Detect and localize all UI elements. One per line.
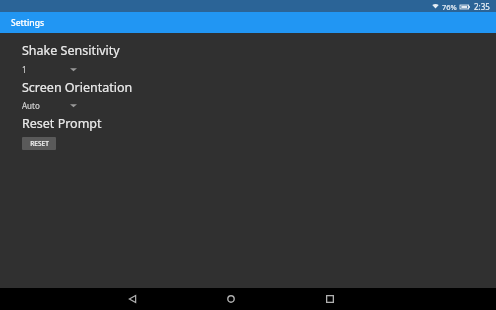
button[interactable]: 1 bbox=[22, 63, 80, 76]
staticText: 1 bbox=[22, 64, 27, 75]
staticText: Reset Prompt bbox=[22, 115, 102, 132]
button[interactable]: Recent apps bbox=[317, 288, 343, 310]
button[interactable]: Back bbox=[119, 288, 145, 310]
staticText: Auto bbox=[22, 100, 40, 111]
staticText: Screen Orientation bbox=[22, 79, 133, 96]
staticText: Shake Sensitivity bbox=[22, 42, 120, 59]
button[interactable]: Home bbox=[218, 288, 244, 310]
staticText: RESET bbox=[30, 139, 49, 148]
staticText: 76% bbox=[442, 2, 457, 12]
staticText: Settings bbox=[11, 17, 45, 29]
button[interactable]: Auto bbox=[22, 99, 80, 112]
button[interactable]: RESET bbox=[22, 137, 56, 150]
staticText: 2:35 bbox=[474, 1, 490, 12]
